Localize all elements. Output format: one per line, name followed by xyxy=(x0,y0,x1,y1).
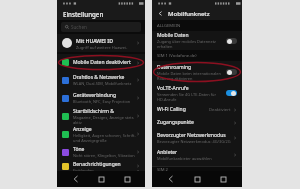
staticText: SIM 2 xyxy=(157,167,169,171)
button[interactable]: Anzeige xyxy=(57,125,145,143)
button[interactable]: Mobile Daten xyxy=(152,31,242,50)
staticText: Töne xyxy=(73,146,85,153)
staticText: VoLTE-Anrufe xyxy=(157,85,189,92)
button[interactable]: Mobile Daten deaktiviert xyxy=(57,54,145,71)
button[interactable]: Back xyxy=(156,9,165,18)
staticText: ALLGEMEIN xyxy=(157,23,181,29)
button[interactable]: Suchen xyxy=(61,22,141,32)
staticText: Datenroaming xyxy=(157,64,192,71)
staticText: Suchen xyxy=(71,24,87,30)
staticText: Einblenden, Sperrbildschirmanzeige, Anze… xyxy=(73,168,136,171)
staticText: Nicht stören, Klingelton, Vibration xyxy=(73,153,135,158)
button[interactable]: Toggle xyxy=(226,90,237,96)
button[interactable]: Startbildschirm & Hintergrund xyxy=(57,107,145,125)
staticText: Deaktiviert xyxy=(209,107,231,113)
staticText: Mobile Daten deaktiviert xyxy=(73,59,136,66)
button[interactable]: Töne xyxy=(57,143,145,161)
staticText: Mobile Daten xyxy=(157,32,189,39)
staticText: Anbieter xyxy=(157,149,178,156)
staticText: Zugriff auf weitere Huawei-Services xyxy=(76,45,136,50)
button[interactable]: Back xyxy=(164,172,178,186)
staticText: Benachrichtigungen xyxy=(73,161,121,168)
staticText: SIM 1 (Vodafone.de) xyxy=(157,53,197,59)
button[interactable]: Recents xyxy=(120,172,134,186)
button[interactable]: Anbieter xyxy=(152,146,242,163)
button[interactable]: Bevorzugter Netzwerkmodus xyxy=(152,129,242,146)
staticText: Mit HUAWEI ID anmelden xyxy=(76,37,136,44)
staticText: Drahtlos & Netzwerke xyxy=(73,74,125,81)
staticText: Helligkeit, Augen schonen, Schrift- und … xyxy=(73,133,136,143)
button[interactable]: Wi-Fi Calling xyxy=(152,103,242,116)
button[interactable]: Home xyxy=(94,172,108,186)
button[interactable]: Home xyxy=(190,172,204,186)
staticText: Mobilfunknetz xyxy=(168,10,210,18)
button[interactable]: Toggle xyxy=(226,69,237,75)
staticText: Wi-Fi Calling xyxy=(157,106,209,113)
staticText: Bevorzugter Netzwerkmodus: 4G/3G/2G xyxy=(157,139,231,144)
button[interactable]: Drahtlos & Netzwerke xyxy=(57,71,145,89)
button[interactable]: Recents xyxy=(216,172,230,186)
staticText: Bevorzugter Netzwerkmodus xyxy=(157,132,226,139)
button[interactable]: Zugangspunkte xyxy=(152,116,242,129)
staticText: Anzeige xyxy=(73,126,92,133)
button[interactable]: Back xyxy=(69,172,83,186)
staticText: Zugang über mobiles Datennetz erhalten xyxy=(157,39,223,49)
staticText: Bluetooth, NFC, Easy Projection xyxy=(73,99,131,104)
staticText: Mobilfunkanbieter auswählen xyxy=(157,156,212,161)
staticText: Verwenden Sie 4G LTE-Daten für HD-Anrufe xyxy=(157,92,223,102)
staticText: Einstellungen xyxy=(63,10,104,18)
staticText: Magazine, Designs, Anzeige stets aktiv xyxy=(73,115,136,125)
button[interactable]: Geräteverbindung xyxy=(57,89,145,107)
staticText: Mobile Daten beim internationalen Roamin… xyxy=(157,71,223,81)
button[interactable]: Datenroaming xyxy=(152,61,242,83)
button[interactable]: Toggle xyxy=(226,38,237,44)
button[interactable]: Benachrichtigungen xyxy=(57,161,145,171)
staticText: Geräteverbindung xyxy=(73,92,116,99)
staticText: WLAN, Dual-SIM, Mobilfunknetz xyxy=(73,81,132,86)
button[interactable]: Mit HUAWEI ID anmelden xyxy=(57,34,145,52)
staticText: Startbildschirm & Hintergrund xyxy=(73,108,136,115)
staticText: Zugangspunkte xyxy=(157,119,233,126)
button[interactable]: VoLTE-Anrufe xyxy=(152,83,242,103)
